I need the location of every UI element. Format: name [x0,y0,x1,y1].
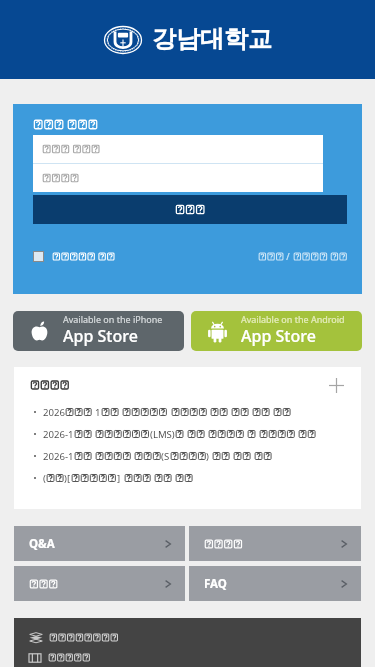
staticText: 강남대학교 [152,24,272,54]
button[interactable] [189,526,361,561]
staticText: / [284,250,293,262]
button[interactable]: FAQ [189,566,361,601]
button[interactable] [14,566,185,601]
staticText: ] [117,472,121,485]
button[interactable]: Available on the iPhone [13,311,184,351]
button[interactable]: Available on the Android [191,311,362,351]
staticText: 1 [95,406,101,419]
button[interactable]: / [258,250,347,262]
staticText: (S [161,450,170,463]
button[interactable]: 2026 [30,401,346,423]
staticText: ( [43,472,46,485]
button[interactable]: ( [30,467,346,489]
staticText: FAQ [204,576,227,592]
button[interactable]: 2026-1 [30,445,346,467]
staticText: Available on the iPhone [63,313,163,325]
button[interactable] [33,195,347,224]
staticText: )[ [64,472,71,485]
button[interactable] [29,627,119,647]
button[interactable]: 더보기 [326,375,346,395]
staticText: 2026 [43,406,65,419]
button[interactable] [33,251,115,262]
staticText: ) [206,450,209,463]
button[interactable] [33,135,323,163]
button[interactable] [29,648,91,667]
staticText: 2026-1 [43,450,74,463]
button[interactable]: Q&A [14,526,185,561]
staticText: App Store [241,325,316,347]
staticText: Q&A [29,536,55,552]
staticText: (LMS) [150,428,175,441]
staticText: Available on the Android [241,313,345,325]
staticText: 2026-1 [43,428,74,441]
button[interactable]: 2026-1 [30,423,346,445]
staticText: App Store [63,325,138,347]
button[interactable] [33,164,323,192]
